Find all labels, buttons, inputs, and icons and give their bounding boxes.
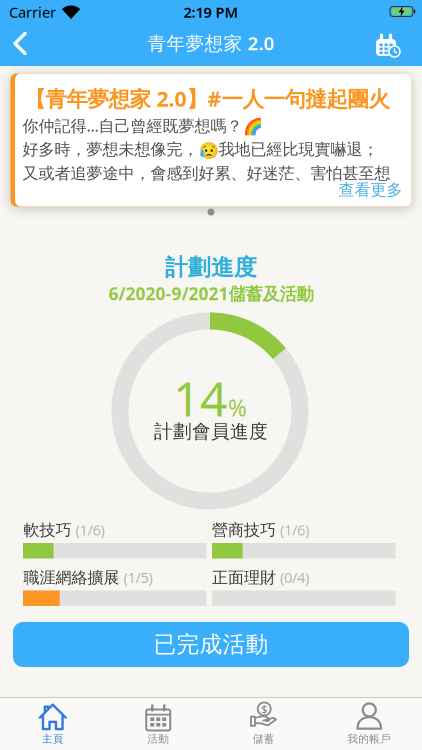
staticText: 計劃進度 [165, 254, 257, 281]
staticText: 我的帳戶 [347, 732, 391, 745]
staticText: 你仲記得...自己曾經既夢想嗎？🌈 [22, 115, 262, 136]
staticText: (1/5) [123, 567, 152, 587]
staticText: 儲蓄 [253, 732, 275, 745]
staticText: 青年夢想家 2.0 [147, 31, 274, 55]
staticText: Carrier [9, 2, 56, 22]
staticText: (0/4) [280, 567, 309, 587]
staticText: 查看更多 [338, 180, 402, 200]
staticText: 好多時，夢想未想像完，😥我地已經比現實嚇退； [22, 140, 378, 159]
staticText: 營商技巧 [212, 520, 276, 540]
button[interactable]: 活動 [105, 697, 211, 750]
staticText: (1/6) [280, 520, 309, 539]
staticText: 已完成活動 [153, 631, 268, 658]
button[interactable]: 主頁 [0, 697, 105, 750]
staticText: 14 [173, 366, 227, 430]
staticText: 職涯網絡擴展 [23, 568, 119, 587]
staticText: 正面理財 [212, 568, 276, 587]
staticText: (1/6) [75, 520, 104, 539]
staticText: % [228, 393, 247, 423]
staticText: 【青年夢想家 2.0】#一人一句撻起團火 [24, 84, 389, 113]
staticText: 6/2020-9/2021儲蓄及活動 [108, 282, 313, 305]
button[interactable]: 查看更多 [338, 180, 402, 200]
staticText: 又或者追夢途中，會感到好累、好迷茫、害怕甚至想 [22, 164, 390, 183]
button[interactable]: $ [211, 697, 316, 750]
button[interactable]: 我的帳戶 [316, 697, 422, 750]
staticText: $ [261, 702, 267, 716]
staticText: 軟技巧 [23, 520, 71, 540]
staticText: 2:19 PM [183, 2, 238, 22]
staticText: 計劃會員進度 [154, 420, 268, 443]
staticText: 活動 [147, 732, 169, 745]
staticText: 主頁 [42, 732, 64, 745]
button[interactable] [375, 32, 401, 58]
button[interactable] [13, 32, 26, 55]
button[interactable]: 已完成活動 [13, 622, 409, 667]
